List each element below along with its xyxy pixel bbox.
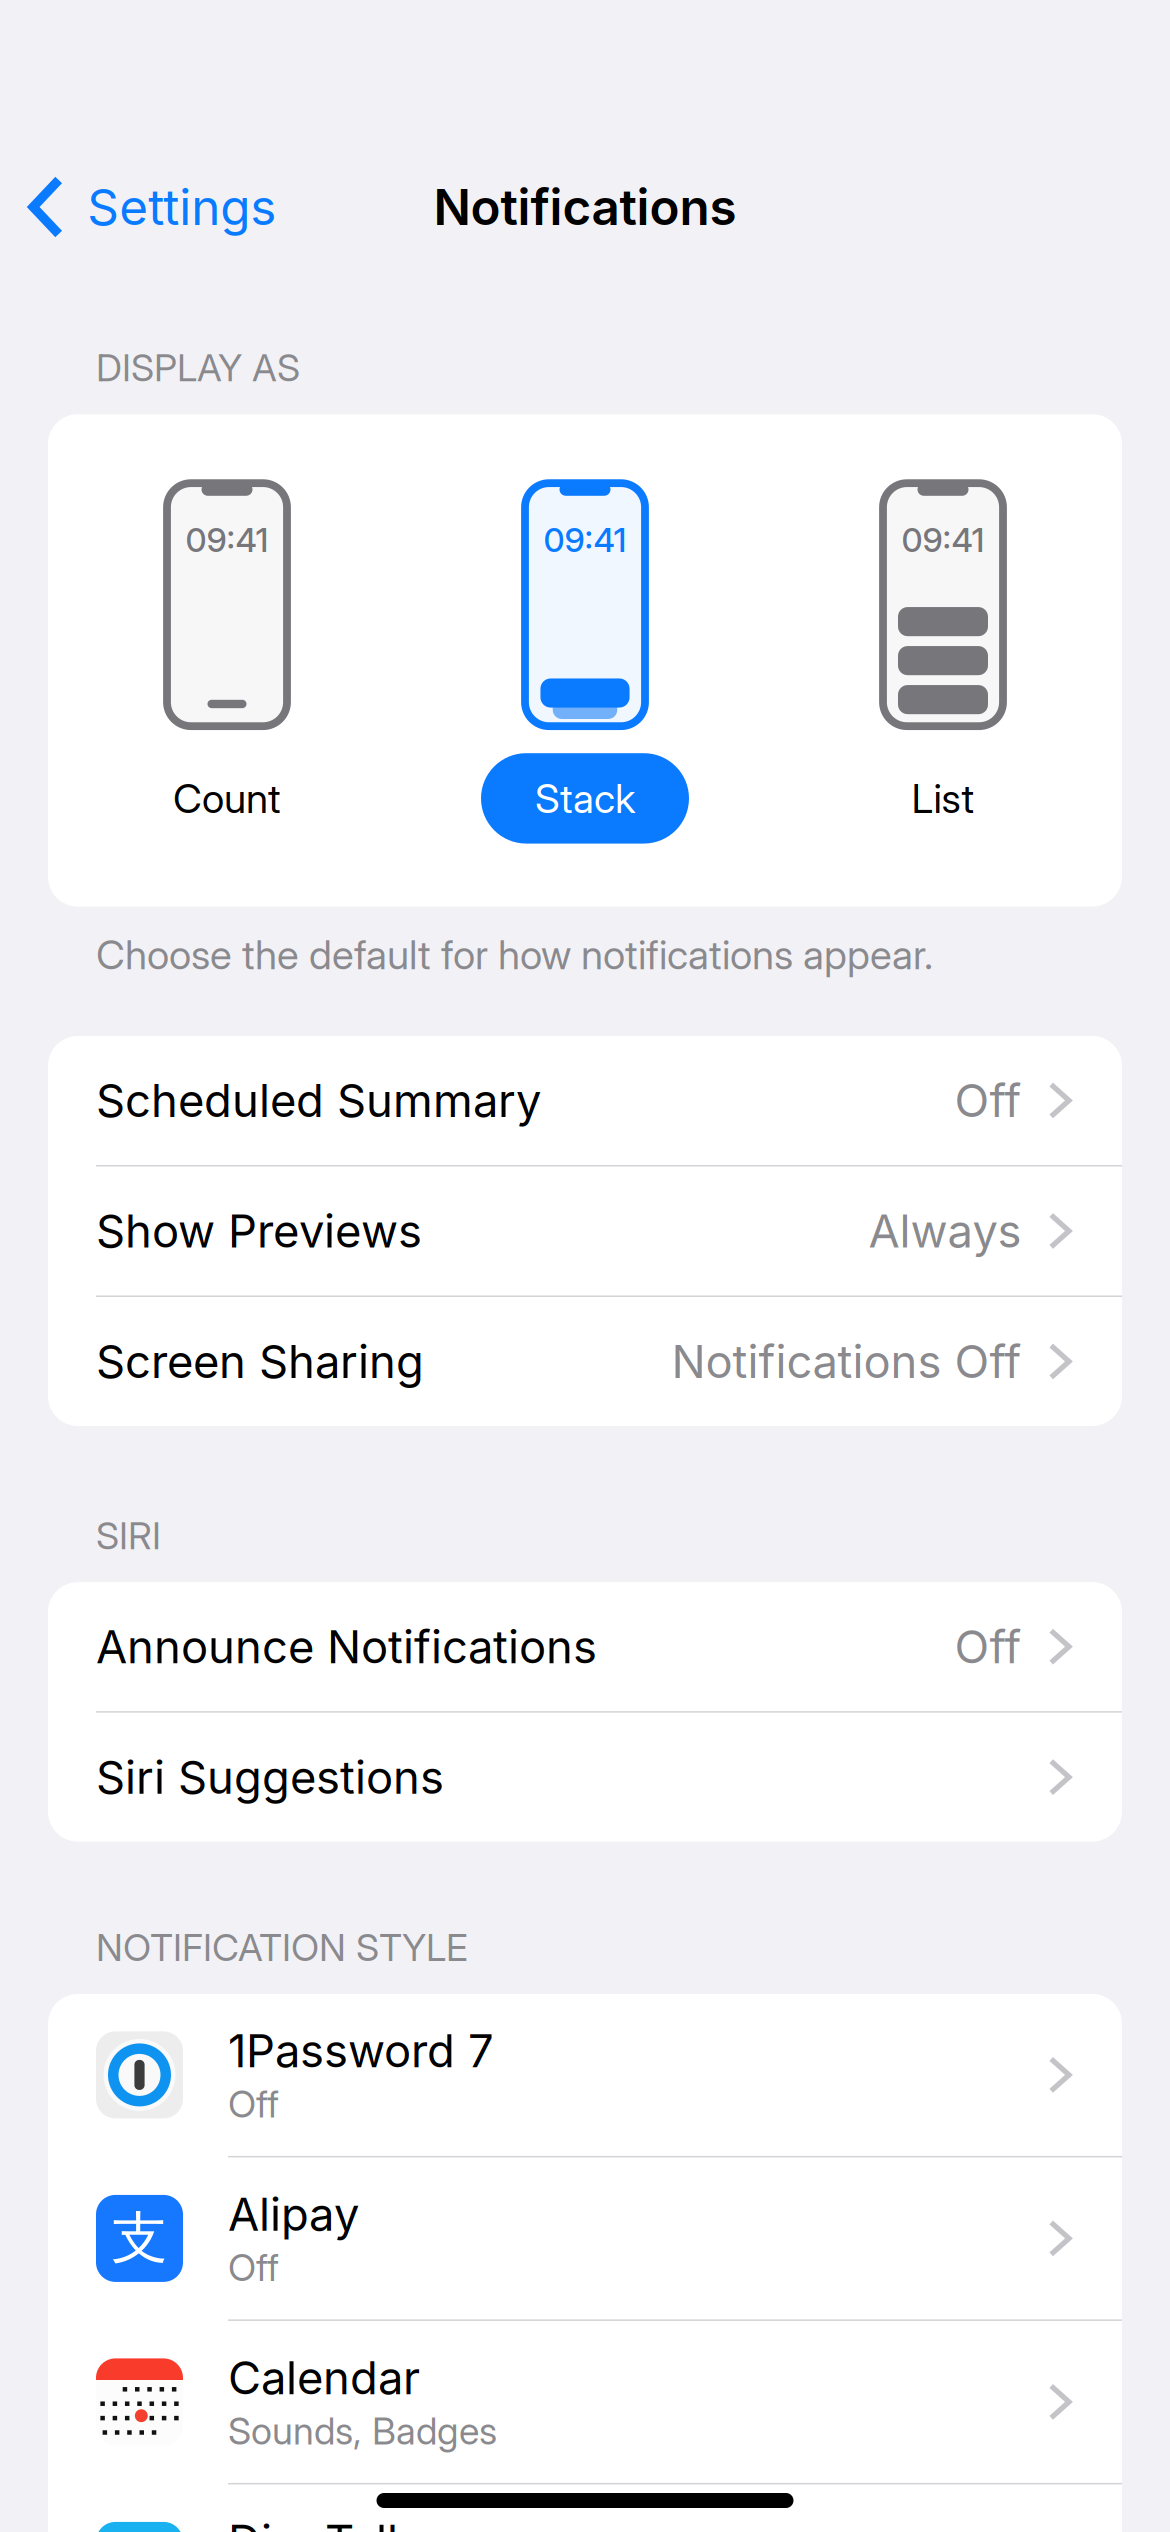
staticText: Choose the default for how notifications… bbox=[96, 931, 933, 979]
staticText: Sounds, Badges bbox=[228, 2408, 497, 2453]
staticText: Settings bbox=[87, 177, 276, 237]
staticText: Stack bbox=[535, 774, 635, 823]
button[interactable]: Show Previews bbox=[48, 1166, 1122, 1295]
button[interactable]: 09:41 bbox=[406, 483, 764, 844]
staticText: 支 bbox=[111, 2203, 167, 2274]
button[interactable]: Calendar bbox=[48, 2321, 1122, 2483]
button[interactable]: 1Password 7 bbox=[48, 1994, 1122, 2156]
staticText: Notifications bbox=[433, 177, 736, 237]
button[interactable]: Siri Suggestions bbox=[48, 1713, 1122, 1842]
staticText: Siri Suggestions bbox=[96, 1750, 444, 1805]
staticText: List bbox=[911, 774, 974, 823]
staticText: Announce Notifications bbox=[96, 1619, 597, 1674]
staticText: Scheduled Summary bbox=[96, 1073, 541, 1128]
staticText: Show Previews bbox=[96, 1203, 422, 1258]
staticText: 1Password 7 bbox=[228, 2023, 494, 2078]
staticText: 09:41 bbox=[185, 520, 268, 560]
button[interactable]: Scheduled Summary bbox=[48, 1036, 1122, 1165]
staticText: Alipay bbox=[228, 2187, 359, 2242]
staticText: DingTalk bbox=[228, 2514, 412, 2532]
staticText: Notifications Off bbox=[671, 1334, 1021, 1389]
button[interactable]: DingTalk bbox=[48, 2484, 1122, 2532]
staticText: Off bbox=[954, 1073, 1021, 1128]
staticText: Off bbox=[228, 2245, 279, 2290]
button[interactable]: 支 bbox=[48, 2157, 1122, 2319]
button[interactable]: 09:41 bbox=[48, 483, 406, 844]
staticText: NOTIFICATION STYLE bbox=[96, 1925, 468, 1970]
staticText: Off bbox=[954, 1619, 1021, 1674]
staticText: 09:41 bbox=[901, 520, 984, 560]
staticText: 09:41 bbox=[543, 520, 626, 560]
staticText: Screen Sharing bbox=[96, 1334, 424, 1389]
staticText: Always bbox=[868, 1203, 1021, 1258]
staticText: Calendar bbox=[228, 2350, 420, 2405]
staticText: Count bbox=[173, 774, 281, 823]
staticText: Off bbox=[228, 2081, 279, 2126]
staticText: SIRI bbox=[96, 1513, 161, 1558]
button[interactable]: 09:41 bbox=[764, 483, 1122, 844]
staticText: DISPLAY AS bbox=[96, 345, 300, 390]
button[interactable]: Screen Sharing bbox=[48, 1297, 1122, 1426]
button[interactable]: Settings bbox=[0, 157, 300, 257]
button[interactable]: Announce Notifications bbox=[48, 1582, 1122, 1711]
